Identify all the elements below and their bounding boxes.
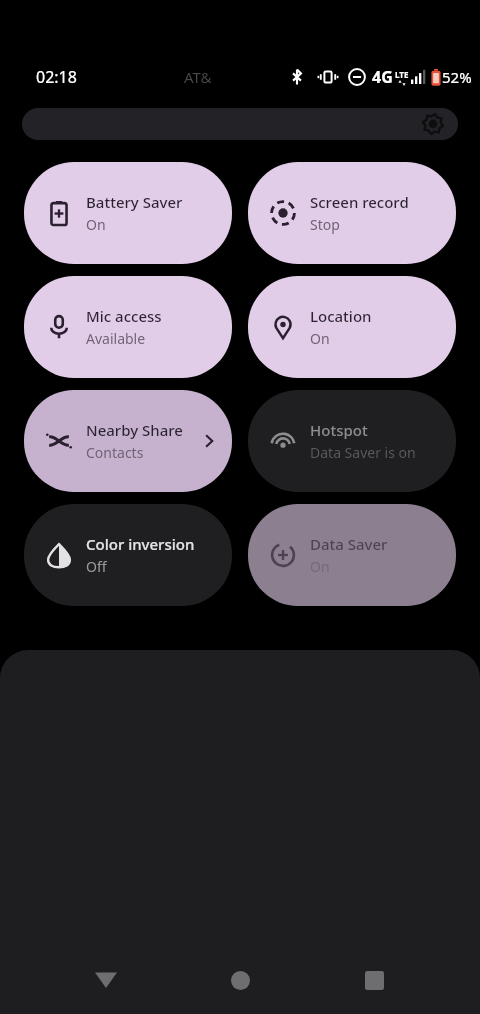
staticText: Screen record <box>310 192 409 212</box>
staticText: 52% <box>442 67 472 87</box>
staticText: Contacts <box>86 443 144 462</box>
staticText: Available <box>86 329 146 348</box>
button[interactable]: Recents <box>346 952 402 1008</box>
button[interactable]: Back <box>78 952 134 1008</box>
staticText: Battery Saver <box>86 192 183 212</box>
staticText: LTE <box>395 69 409 80</box>
button[interactable]: Data Saver <box>248 504 456 606</box>
staticText: Data Saver is on <box>310 443 416 462</box>
button[interactable]: Hotspot <box>248 390 456 492</box>
button[interactable]: Brightness <box>22 108 458 140</box>
staticText: Nearby Share <box>86 420 183 440</box>
staticText: Color inversion <box>86 534 195 554</box>
staticText: 02:18 <box>36 66 77 88</box>
button[interactable]: Location <box>248 276 456 378</box>
button[interactable]: Nearby Share <box>24 390 232 492</box>
staticText: Stop <box>310 215 340 234</box>
staticText: Mic access <box>86 306 162 326</box>
button[interactable]: Home <box>212 952 268 1008</box>
button[interactable]: Screen record <box>248 162 456 264</box>
button[interactable]: Battery Saver <box>24 162 232 264</box>
staticText: On <box>86 215 106 234</box>
staticText: 4G <box>372 66 393 88</box>
staticText: Location <box>310 306 372 326</box>
staticText: On <box>310 557 330 576</box>
staticText: Off <box>86 557 107 576</box>
staticText: Data Saver <box>310 534 388 554</box>
staticText: Hotspot <box>310 420 368 440</box>
staticText: On <box>310 329 330 348</box>
button[interactable]: Color inversion <box>24 504 232 606</box>
button[interactable]: Mic access <box>24 276 232 378</box>
staticText: AT& <box>184 67 212 87</box>
